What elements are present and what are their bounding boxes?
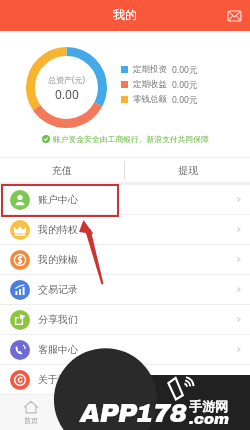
button[interactable]: 账户中心 [0, 185, 250, 214]
staticText: 我的 [212, 416, 226, 425]
staticText: 交易记录 [38, 283, 78, 296]
staticText: 充值 [52, 164, 72, 177]
staticText: 定期投资 [133, 64, 167, 75]
staticText: 首页 [24, 416, 38, 425]
button[interactable]: 关于我们 [0, 365, 250, 394]
staticText: APP178 [80, 399, 187, 427]
button[interactable]: 我的 [187, 395, 250, 430]
staticText: 分享我们 [38, 313, 78, 326]
staticText: 0.00 [55, 86, 79, 102]
staticText: 我的特权 [38, 223, 78, 236]
staticText: 总资产(元) [48, 74, 85, 85]
button[interactable]: 客服中心 [0, 335, 250, 364]
staticText: 手游网 [189, 398, 228, 414]
staticText: 理财 [86, 416, 100, 425]
button[interactable]: 提现 [125, 158, 250, 182]
button[interactable]: 充值 [0, 158, 124, 182]
staticText: 零钱总额 [133, 94, 167, 105]
staticText: 0.00元 [172, 94, 198, 105]
staticText: 关于我们 [38, 373, 78, 386]
button[interactable]: 交易记录 [0, 275, 250, 304]
button[interactable]: 分享我们 [0, 305, 250, 334]
staticText: 0.00元 [172, 64, 198, 75]
staticText: 发现 [149, 416, 163, 425]
button[interactable]: 我的特权 [0, 215, 250, 244]
staticText: 提现 [178, 164, 198, 177]
staticText: 定期收益 [133, 79, 167, 90]
staticText: .com [189, 411, 230, 427]
staticText: 我的 [113, 7, 137, 22]
staticText: 0.00元 [172, 79, 198, 90]
button[interactable]: 我的辣椒 [0, 245, 250, 274]
button[interactable]: 发现 [124, 395, 187, 430]
staticText: 账户资金安全由工商银行、新浪支付共同保障 [53, 134, 209, 144]
button[interactable]: Messages [225, 7, 243, 25]
button[interactable]: 首页 [0, 395, 62, 430]
staticText: 客服中心 [38, 343, 78, 356]
button[interactable]: 理财 [62, 395, 124, 430]
staticText: 我的辣椒 [38, 253, 78, 266]
staticText: 账户中心 [38, 193, 78, 206]
